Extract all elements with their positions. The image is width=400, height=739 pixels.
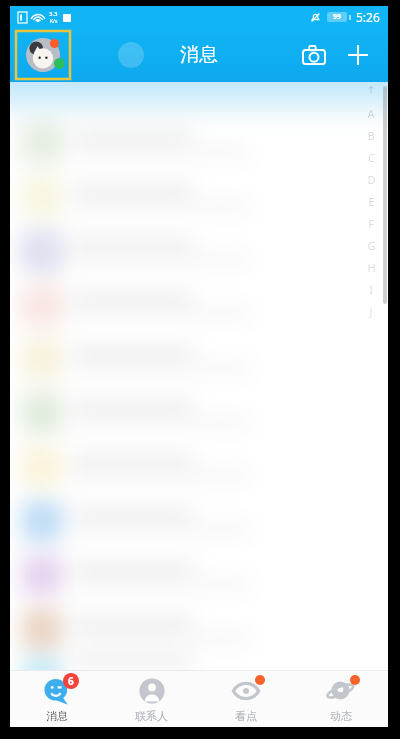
button[interactable] [10,170,388,224]
button[interactable] [10,656,388,670]
staticText: 动态 [330,709,352,723]
staticText: J [369,304,373,326]
staticText: 消息 [180,43,218,67]
staticText: C [368,150,375,172]
button[interactable] [10,278,388,332]
button[interactable]: 6 [10,671,104,727]
button[interactable] [10,440,388,494]
button[interactable] [10,548,388,602]
button[interactable]: 动态 [293,671,388,727]
button[interactable] [10,602,388,656]
staticText: B [367,128,375,150]
staticText: F [368,216,374,238]
staticText: A [367,106,375,128]
staticText: E [368,194,375,216]
button[interactable]: 看点 [198,671,293,727]
button[interactable]: Add [336,33,380,77]
staticText: H [367,260,376,282]
button[interactable] [10,224,388,278]
staticText: 6 [68,674,74,688]
staticText: 消息 [46,709,68,723]
staticText: 99 [333,12,342,22]
staticText: ↑ [366,84,376,106]
button[interactable] [10,386,388,440]
staticText: D [367,172,376,194]
staticText: K/s [50,18,58,25]
staticText: 联系人 [135,709,168,723]
button[interactable] [10,332,388,386]
staticText: I [369,282,373,304]
button[interactable] [10,116,388,170]
button[interactable]: Camera [292,33,336,77]
staticText: G [367,238,376,260]
staticText: 看点 [235,709,257,723]
staticText: 5:26 [356,9,380,25]
button[interactable]: 联系人 [104,671,198,727]
staticText: 3.3 [49,10,58,18]
button[interactable]: Profile avatar [16,31,70,79]
button[interactable] [10,494,388,548]
